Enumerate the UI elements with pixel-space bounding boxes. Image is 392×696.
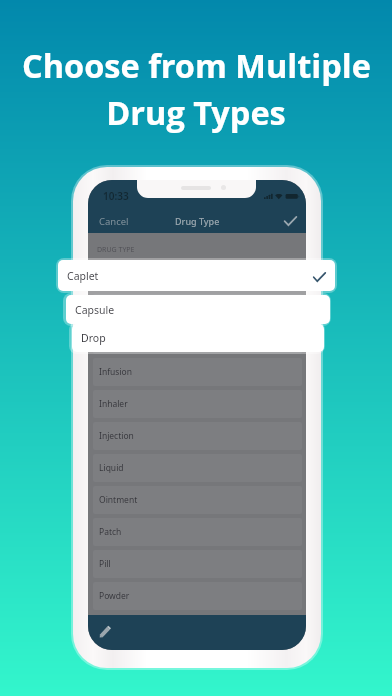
staticText: Drug Type	[175, 215, 220, 227]
button[interactable]: Caplet	[93, 263, 302, 291]
button[interactable]: Pill	[93, 550, 302, 578]
button[interactable]: Drop	[93, 326, 302, 354]
staticText: Pill	[99, 558, 111, 570]
staticText: Injection	[99, 430, 134, 442]
button[interactable]: Inhaler	[93, 390, 302, 418]
staticText: 10:33	[103, 189, 129, 203]
staticText: Patch	[99, 526, 122, 538]
staticText: Caplet	[67, 269, 99, 283]
button[interactable]: Capsule	[93, 294, 302, 322]
button[interactable]: Cancel	[99, 215, 129, 228]
staticText: Powder	[99, 590, 130, 602]
button[interactable]: Edit	[96, 618, 114, 636]
button[interactable]: Patch	[93, 518, 302, 546]
staticText: DRUG TYPE	[97, 245, 135, 255]
button[interactable]: Ointment	[93, 486, 302, 514]
staticText: Inhaler	[99, 398, 128, 410]
staticText: Liquid	[99, 462, 124, 474]
staticText: Drop	[99, 334, 119, 346]
staticText: Capsule	[75, 303, 115, 317]
staticText: Drop	[81, 331, 106, 345]
button[interactable]: Powder	[93, 582, 302, 610]
button[interactable]: Liquid	[93, 454, 302, 482]
staticText: Drug Types	[106, 90, 286, 134]
button[interactable]: Caplet	[58, 260, 335, 291]
button[interactable]: Drop	[72, 324, 324, 352]
button[interactable]: Done	[278, 209, 302, 233]
staticText: Infusion	[99, 366, 132, 378]
button[interactable]: Capsule	[66, 295, 330, 324]
staticText: Choose from Multiple	[22, 43, 371, 87]
button[interactable]: Infusion	[93, 358, 302, 386]
staticText: Capsule	[99, 302, 131, 314]
staticText: Ointment	[99, 494, 138, 506]
button[interactable]: Injection	[93, 422, 302, 450]
